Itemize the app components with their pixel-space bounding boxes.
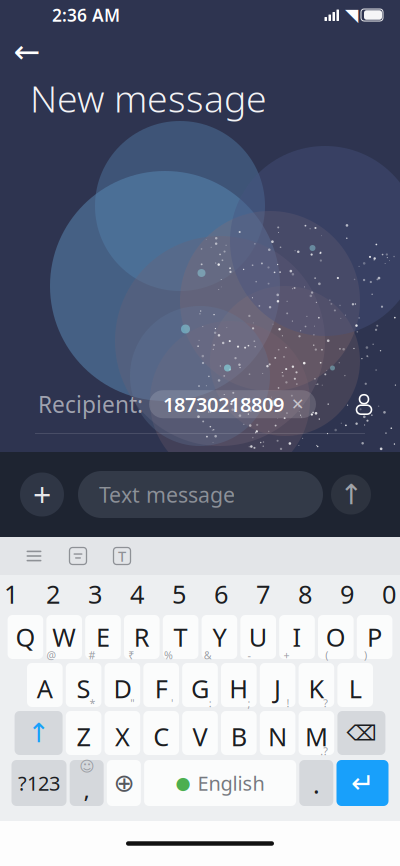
staticText: 1 xyxy=(4,577,18,611)
button[interactable]: + xyxy=(260,663,295,707)
staticText: ! xyxy=(286,696,289,710)
button[interactable]: Text message xyxy=(78,471,323,518)
staticText: 8 xyxy=(298,577,312,611)
staticText: . xyxy=(313,770,319,800)
button[interactable]: % xyxy=(143,663,179,707)
button[interactable]: Q xyxy=(8,615,43,659)
button[interactable]: * xyxy=(66,711,101,755)
button[interactable]: 8 xyxy=(288,577,322,611)
staticText: S xyxy=(77,672,91,705)
button[interactable]: ₹ xyxy=(105,663,140,707)
staticText: % xyxy=(164,648,173,662)
button[interactable]: P xyxy=(357,615,392,659)
staticText: F xyxy=(155,672,168,705)
staticText: ₹ xyxy=(128,648,134,662)
staticText: Recipient: xyxy=(38,389,143,419)
staticText: ) xyxy=(364,648,367,662)
button[interactable]: Emoji and comma xyxy=(70,760,104,806)
button[interactable]: " xyxy=(105,711,140,755)
button[interactable]: Clipboard xyxy=(60,540,96,572)
button[interactable]: # xyxy=(66,663,101,707)
button[interactable]: ) xyxy=(337,663,373,707)
staticText: W xyxy=(52,620,76,654)
button[interactable]: 4 xyxy=(120,577,154,611)
button[interactable]: U xyxy=(240,615,276,659)
staticText: L xyxy=(349,672,362,705)
button[interactable]: 0 xyxy=(372,577,400,611)
button[interactable]: ! xyxy=(260,711,295,755)
button[interactable]: 5 xyxy=(162,577,196,611)
staticText: 6 xyxy=(214,577,228,611)
staticText: K xyxy=(308,672,324,705)
button[interactable]: Back xyxy=(0,32,54,72)
button[interactable]: - xyxy=(221,663,257,707)
staticText: T xyxy=(118,546,126,566)
staticText: I xyxy=(292,620,301,654)
button[interactable]: Menu xyxy=(16,540,52,572)
staticText: 2 xyxy=(46,577,60,611)
staticText: + xyxy=(283,648,289,662)
button[interactable]: Add attachment xyxy=(20,472,64,516)
staticText: Text message xyxy=(99,480,235,509)
button[interactable]: Y xyxy=(202,615,237,659)
staticText: C xyxy=(153,720,169,753)
button[interactable]: Send xyxy=(331,474,371,514)
button[interactable]: ?123 xyxy=(11,760,66,806)
button[interactable]: Choose contact xyxy=(342,384,386,424)
button[interactable]: Shift xyxy=(15,711,63,755)
button[interactable]: ? xyxy=(299,711,334,755)
staticText: 18730218809 xyxy=(163,391,284,417)
staticText: + xyxy=(33,473,51,516)
button[interactable]: T xyxy=(163,615,198,659)
staticText: # xyxy=(88,648,95,662)
staticText: N xyxy=(268,720,287,753)
staticText: , xyxy=(84,776,90,804)
staticText: ● xyxy=(176,773,191,793)
button[interactable]: Period xyxy=(299,760,333,806)
button[interactable]: Backspace xyxy=(337,711,385,755)
staticText: 0 xyxy=(382,577,396,611)
staticText: P xyxy=(367,620,382,654)
button[interactable]: Text style xyxy=(104,540,140,572)
button[interactable]: Switch language xyxy=(107,760,141,806)
button[interactable]: ' xyxy=(143,711,179,755)
staticText: ↑ xyxy=(28,718,50,748)
button[interactable]: 7 xyxy=(246,577,280,611)
staticText: X xyxy=(115,720,130,753)
button[interactable]: 3 xyxy=(78,577,112,611)
staticText: : xyxy=(209,696,212,710)
button[interactable]: 9 xyxy=(330,577,364,611)
staticText: ⌫ xyxy=(346,721,376,745)
button[interactable]: W xyxy=(46,615,82,659)
staticText: Q xyxy=(15,620,35,654)
button[interactable]: ( xyxy=(299,663,334,707)
button[interactable]: : xyxy=(182,711,218,755)
button[interactable]: 1 xyxy=(0,577,28,611)
button[interactable]: 6 xyxy=(204,577,238,611)
button[interactable]: & xyxy=(182,663,218,707)
button[interactable]: Return xyxy=(336,760,388,806)
staticText: E xyxy=(96,620,110,654)
staticText: D xyxy=(113,672,131,705)
button[interactable]: I xyxy=(279,615,315,659)
staticText: & xyxy=(204,648,212,662)
staticText: B xyxy=(231,720,247,753)
staticText: 5 xyxy=(172,577,186,611)
staticText: New message xyxy=(30,73,267,123)
button[interactable]: O xyxy=(318,615,354,659)
staticText: ✕ xyxy=(291,395,304,413)
button[interactable]: ● xyxy=(144,760,296,806)
staticText: Y xyxy=(212,620,226,654)
button[interactable]: 18730218809 xyxy=(149,390,316,418)
button[interactable]: ; xyxy=(221,711,257,755)
staticText: English xyxy=(198,770,265,796)
button[interactable]: E xyxy=(85,615,121,659)
staticText: ; xyxy=(248,696,251,710)
staticText: Z xyxy=(77,720,91,753)
button[interactable]: @ xyxy=(27,663,63,707)
button[interactable]: R xyxy=(124,615,160,659)
staticText: ◥ xyxy=(345,5,358,25)
staticText: A xyxy=(37,672,53,705)
button[interactable]: 2 xyxy=(36,577,70,611)
staticText: - xyxy=(248,648,251,662)
